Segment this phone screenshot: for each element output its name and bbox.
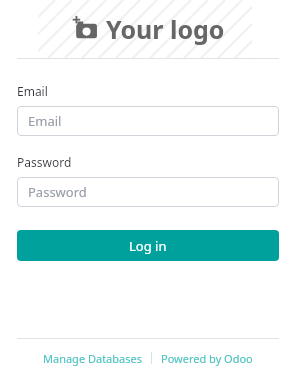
staticText: Powered by Odoo <box>161 351 253 366</box>
staticText: Password <box>28 183 87 201</box>
button[interactable]: Manage Databases <box>43 351 142 366</box>
button[interactable]: Powered by Odoo <box>161 351 253 366</box>
staticText: Email <box>17 83 48 99</box>
staticText: Password <box>17 154 72 170</box>
staticText: Email <box>28 112 62 130</box>
button[interactable]: Password <box>17 177 279 207</box>
staticText: Your logo <box>106 12 225 46</box>
other: Add logo <box>72 16 98 42</box>
staticText: Log in <box>129 237 167 255</box>
button[interactable]: Log in <box>17 230 279 261</box>
staticText: Manage Databases <box>43 351 142 366</box>
button[interactable]: Email <box>17 106 279 136</box>
